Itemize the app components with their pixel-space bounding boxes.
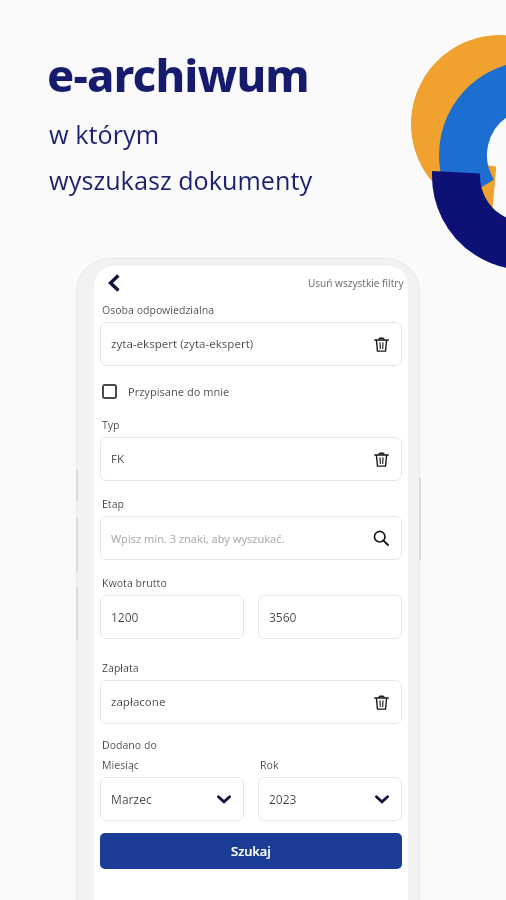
- staticText: Szukaj: [231, 842, 271, 860]
- button[interactable]: Szukaj: [100, 833, 402, 869]
- button[interactable]: Usuń: [371, 449, 391, 469]
- staticText: e-archiwum: [47, 44, 309, 105]
- staticText: zyta-ekspert (zyta-ekspert): [111, 336, 371, 352]
- button[interactable]: Usuń: [371, 692, 391, 712]
- staticText: Kwota brutto: [102, 576, 167, 590]
- staticText: Typ: [102, 418, 120, 432]
- staticText: 2023: [269, 791, 375, 807]
- button[interactable]: 1200: [100, 595, 244, 639]
- staticText: Rok: [260, 758, 279, 772]
- button[interactable]: 2023: [258, 777, 402, 821]
- button[interactable]: Usuń wszystkie filtry: [306, 272, 406, 294]
- button[interactable]: Marzec: [100, 777, 244, 821]
- staticText: Dodano do: [102, 738, 157, 752]
- staticText: Miesiąc: [102, 758, 139, 772]
- button[interactable]: Wpisz min. 3 znaki, aby wyszukać.: [100, 516, 402, 560]
- button[interactable]: zyta-ekspert (zyta-ekspert): [100, 322, 402, 366]
- staticText: Usuń wszystkie filtry: [308, 276, 404, 290]
- button[interactable]: 3560: [258, 595, 402, 639]
- button[interactable]: Przypisane do mnie: [100, 382, 402, 401]
- staticText: zapłacone: [111, 694, 371, 710]
- staticText: w którym: [49, 117, 160, 151]
- staticText: FK: [111, 451, 371, 467]
- button[interactable]: FK: [100, 437, 402, 481]
- button[interactable]: Szukaj: [371, 528, 391, 548]
- staticText: Przypisane do mnie: [128, 384, 230, 399]
- staticText: wyszukasz dokumenty: [49, 163, 313, 197]
- button[interactable]: Wstecz: [100, 269, 128, 297]
- staticText: Marzec: [111, 791, 217, 807]
- staticText: Zapłata: [102, 661, 139, 675]
- staticText: Wpisz min. 3 znaki, aby wyszukać.: [111, 531, 371, 546]
- button[interactable]: Usuń: [371, 334, 391, 354]
- button[interactable]: zapłacone: [100, 680, 402, 724]
- staticText: 3560: [269, 609, 297, 625]
- staticText: Osoba odpowiedzialna: [102, 303, 215, 317]
- staticText: Etap: [102, 497, 124, 511]
- staticText: 1200: [111, 609, 139, 625]
